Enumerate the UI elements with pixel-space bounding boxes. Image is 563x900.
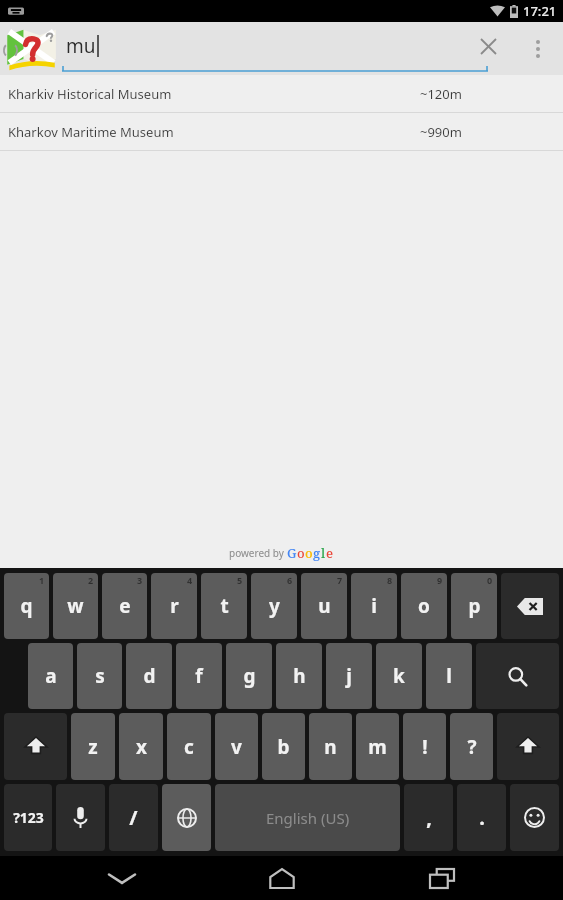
button[interactable]: Change language bbox=[162, 784, 211, 851]
staticText: s bbox=[95, 663, 105, 689]
staticText: o bbox=[418, 593, 430, 619]
button[interactable]: w bbox=[53, 573, 98, 639]
staticText: G bbox=[287, 544, 297, 562]
staticText: i bbox=[371, 593, 377, 619]
staticText: g bbox=[313, 544, 321, 562]
staticText: 5 bbox=[237, 574, 243, 586]
staticText: p bbox=[468, 593, 481, 619]
staticText: 4 bbox=[187, 574, 193, 586]
button[interactable]: a bbox=[28, 643, 73, 709]
button[interactable]: Recent apps bbox=[412, 856, 472, 900]
button[interactable]: v bbox=[215, 713, 258, 780]
button[interactable]: b bbox=[262, 713, 305, 780]
staticText: ! bbox=[422, 734, 428, 760]
staticText: h bbox=[293, 663, 306, 689]
button[interactable]: ! bbox=[403, 713, 446, 780]
button[interactable]: j bbox=[326, 643, 372, 709]
staticText: 17:21 bbox=[523, 2, 557, 20]
button[interactable]: Kharkov Maritime Museum bbox=[0, 113, 563, 151]
button[interactable]: Backspace bbox=[501, 573, 559, 639]
staticText: x bbox=[136, 734, 147, 760]
staticText: a bbox=[45, 663, 57, 689]
button[interactable]: s bbox=[77, 643, 122, 709]
staticText: l bbox=[321, 544, 326, 562]
button[interactable]: m bbox=[356, 713, 399, 780]
button[interactable]: t bbox=[201, 573, 247, 639]
button[interactable]: Search bbox=[476, 643, 559, 709]
button[interactable]: , bbox=[404, 784, 453, 851]
button[interactable]: / bbox=[109, 784, 158, 851]
button[interactable]: . bbox=[457, 784, 506, 851]
staticText: c bbox=[184, 734, 194, 760]
staticText: 6 bbox=[287, 574, 293, 586]
staticText: y bbox=[269, 593, 280, 619]
staticText: ?123 bbox=[13, 808, 44, 827]
staticText: / bbox=[129, 804, 138, 831]
button[interactable]: k bbox=[376, 643, 422, 709]
staticText: ? bbox=[467, 734, 477, 760]
button[interactable]: i bbox=[351, 573, 397, 639]
staticText: ~990m bbox=[420, 123, 462, 141]
staticText: Kharkiv Historical Museum bbox=[8, 85, 172, 103]
staticText: l bbox=[446, 663, 452, 689]
button[interactable]: n bbox=[309, 713, 352, 780]
staticText: powered by bbox=[229, 546, 287, 560]
staticText: d bbox=[143, 663, 156, 689]
button[interactable]: Voice input bbox=[56, 784, 105, 851]
button[interactable]: Shift bbox=[4, 713, 67, 780]
staticText: v bbox=[231, 734, 242, 760]
staticText: ~120m bbox=[420, 85, 462, 103]
button[interactable]: ? bbox=[450, 713, 493, 780]
staticText: o bbox=[297, 544, 305, 562]
button[interactable]: App icon bbox=[0, 22, 62, 75]
button[interactable]: Home bbox=[252, 856, 312, 900]
staticText: e bbox=[326, 544, 334, 562]
button[interactable]: q bbox=[4, 573, 49, 639]
button[interactable]: f bbox=[176, 643, 222, 709]
button[interactable]: More options bbox=[513, 22, 563, 75]
button[interactable]: Kharkiv Historical Museum bbox=[0, 75, 563, 113]
staticText: k bbox=[393, 663, 405, 689]
staticText: t bbox=[220, 593, 229, 619]
staticText: 8 bbox=[387, 574, 393, 586]
button[interactable]: d bbox=[126, 643, 172, 709]
button[interactable]: g bbox=[226, 643, 272, 709]
staticText: z bbox=[88, 734, 98, 760]
staticText: m bbox=[368, 734, 387, 760]
button[interactable]: c bbox=[167, 713, 211, 780]
staticText: n bbox=[324, 734, 337, 760]
button[interactable]: Clear query bbox=[471, 29, 505, 63]
staticText: , bbox=[426, 804, 432, 831]
button[interactable]: ?123 bbox=[4, 784, 52, 851]
button[interactable]: h bbox=[276, 643, 322, 709]
button[interactable]: l bbox=[426, 643, 472, 709]
staticText: 1 bbox=[39, 574, 45, 586]
staticText: q bbox=[20, 593, 33, 619]
staticText: f bbox=[195, 663, 203, 689]
staticText: Kharkov Maritime Museum bbox=[8, 123, 174, 141]
staticText: 7 bbox=[337, 574, 343, 586]
staticText: . bbox=[479, 804, 485, 831]
staticText: u bbox=[318, 593, 331, 619]
button[interactable]: y bbox=[251, 573, 297, 639]
staticText: w bbox=[67, 593, 84, 619]
staticText: e bbox=[119, 593, 131, 619]
staticText: 3 bbox=[137, 574, 143, 586]
staticText: o bbox=[305, 544, 313, 562]
button[interactable]: p bbox=[451, 573, 497, 639]
button[interactable]: Shift bbox=[497, 713, 559, 780]
staticText: g bbox=[243, 663, 256, 689]
button[interactable]: x bbox=[119, 713, 163, 780]
button[interactable]: Emoji bbox=[510, 784, 559, 851]
button[interactable]: Hide keyboard bbox=[92, 856, 152, 900]
button[interactable]: o bbox=[401, 573, 447, 639]
button[interactable]: u bbox=[301, 573, 347, 639]
staticText: 0 bbox=[487, 574, 493, 586]
staticText: 9 bbox=[437, 574, 443, 586]
button[interactable]: r bbox=[151, 573, 197, 639]
button[interactable]: e bbox=[102, 573, 147, 639]
staticText: j bbox=[346, 663, 352, 689]
staticText: 2 bbox=[88, 574, 94, 586]
button[interactable]: English (US) bbox=[215, 784, 400, 851]
button[interactable]: z bbox=[71, 713, 115, 780]
